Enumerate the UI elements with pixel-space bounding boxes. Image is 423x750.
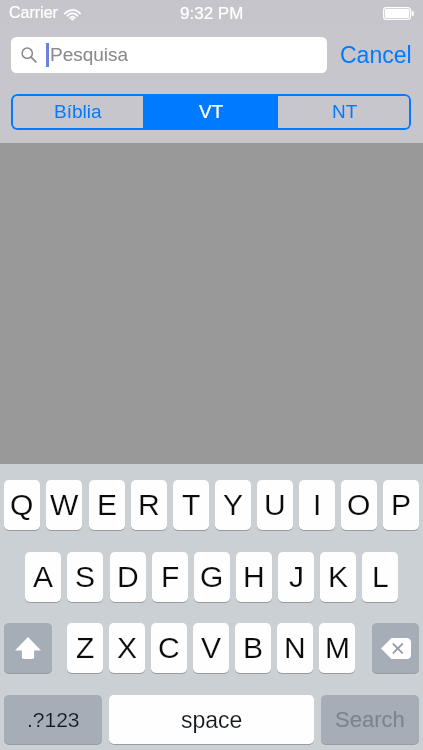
staticText: K xyxy=(328,560,349,594)
button[interactable]: X xyxy=(109,623,145,673)
staticText: F xyxy=(161,560,180,594)
button[interactable]: C xyxy=(151,623,187,673)
staticText: Bíblia xyxy=(54,101,102,122)
staticText: .?123 xyxy=(27,708,80,731)
button[interactable]: E xyxy=(89,480,125,530)
staticText: E xyxy=(97,488,118,522)
button[interactable]: P xyxy=(383,480,419,530)
staticText: W xyxy=(50,488,79,522)
staticText: Pesquisa xyxy=(50,44,129,65)
button[interactable]: B xyxy=(235,623,271,673)
button[interactable]: T xyxy=(173,480,209,530)
button[interactable]: Bíblia xyxy=(11,94,145,130)
staticText: Cancel xyxy=(340,42,412,68)
staticText: Q xyxy=(10,488,34,522)
button[interactable]: Y xyxy=(215,480,251,530)
button[interactable]: .?123 xyxy=(4,695,102,744)
staticText: NT xyxy=(332,101,358,122)
staticText: D xyxy=(117,560,139,594)
staticText: O xyxy=(347,488,371,522)
button[interactable]: NT xyxy=(278,94,411,130)
staticText: Y xyxy=(223,488,244,522)
staticText: X xyxy=(117,631,138,665)
staticText: R xyxy=(138,488,160,522)
staticText: V xyxy=(201,631,222,665)
staticText: N xyxy=(284,631,306,665)
button[interactable]: V xyxy=(193,623,229,673)
button[interactable]: Q xyxy=(4,480,40,530)
button[interactable]: VT xyxy=(145,94,278,130)
button[interactable]: Shift xyxy=(4,623,52,673)
button[interactable]: O xyxy=(341,480,377,530)
button[interactable]: Search xyxy=(321,695,419,744)
button[interactable]: F xyxy=(152,552,188,602)
staticText: M xyxy=(325,631,350,665)
staticText: Z xyxy=(76,631,95,665)
button[interactable]: G xyxy=(194,552,230,602)
button[interactable]: J xyxy=(278,552,314,602)
button[interactable]: I xyxy=(299,480,335,530)
button[interactable]: K xyxy=(320,552,356,602)
staticText: S xyxy=(75,560,96,594)
button[interactable]: U xyxy=(257,480,293,530)
staticText: Carrier xyxy=(9,4,58,22)
button[interactable]: W xyxy=(46,480,82,530)
staticText: space xyxy=(181,707,243,733)
staticText: I xyxy=(313,488,322,522)
staticText: A xyxy=(33,560,54,594)
staticText: C xyxy=(158,631,180,665)
staticText: 9:32 PM xyxy=(180,4,244,23)
button[interactable]: A xyxy=(25,552,61,602)
button[interactable]: Cancel xyxy=(334,37,418,73)
staticText: U xyxy=(264,488,286,522)
staticText: B xyxy=(243,631,264,665)
button[interactable]: D xyxy=(110,552,146,602)
button[interactable]: space xyxy=(109,695,314,744)
button[interactable]: N xyxy=(277,623,313,673)
button[interactable]: Z xyxy=(67,623,103,673)
staticText: L xyxy=(372,560,389,594)
staticText: H xyxy=(243,560,265,594)
button[interactable]: S xyxy=(67,552,103,602)
staticText: G xyxy=(200,560,224,594)
staticText: J xyxy=(289,560,304,594)
button[interactable]: M xyxy=(319,623,355,673)
staticText: P xyxy=(391,488,412,522)
button[interactable]: Backspace xyxy=(372,623,419,673)
button[interactable]: Pesquisa xyxy=(11,37,327,73)
button[interactable]: L xyxy=(362,552,398,602)
staticText: Search xyxy=(335,707,405,732)
staticText: T xyxy=(182,488,201,522)
button[interactable]: R xyxy=(131,480,167,530)
staticText: VT xyxy=(199,101,224,122)
button[interactable]: H xyxy=(236,552,272,602)
